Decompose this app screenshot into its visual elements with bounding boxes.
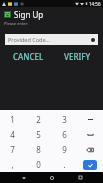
other: Backspace: [86, 146, 94, 154]
staticText: .: [63, 159, 66, 170]
button[interactable]: 5: [25, 127, 51, 142]
staticText: 5: [36, 129, 41, 140]
button[interactable]: Home: [46, 172, 57, 183]
button[interactable]: Enter: [77, 157, 103, 172]
button[interactable]: Space: [77, 127, 103, 142]
staticText: 3: [62, 114, 67, 125]
button[interactable]: 3: [51, 112, 77, 127]
button[interactable]: Recent apps: [75, 172, 86, 183]
button[interactable]: Clear text: [91, 38, 95, 42]
button[interactable]: Backspace: [77, 142, 103, 157]
button[interactable]: VERIFY: [60, 49, 95, 64]
staticText: ,: [11, 159, 14, 170]
staticText: Sign Up: [14, 9, 44, 20]
staticText: Provided Code...: [8, 36, 50, 43]
button[interactable]: 6: [51, 127, 77, 142]
button[interactable]: 8: [25, 142, 51, 157]
staticText: 6: [62, 129, 67, 140]
button[interactable]: 9: [51, 142, 77, 157]
button[interactable]: 4: [0, 127, 25, 142]
staticText: VERIFY: [64, 51, 91, 62]
staticText: 14:56: [89, 1, 101, 7]
staticText: 1: [10, 114, 15, 125]
staticText: 0: [36, 159, 41, 170]
staticText: 8: [36, 144, 41, 155]
other: Dash: [88, 117, 93, 122]
staticText: 4: [10, 129, 15, 140]
staticText: Please enter:: [4, 21, 29, 26]
staticText: 7: [10, 144, 15, 155]
button[interactable]: 2: [25, 112, 51, 127]
staticText: 9: [62, 144, 67, 155]
button[interactable]: 7: [0, 142, 25, 157]
button[interactable]: ,: [0, 157, 25, 172]
button[interactable]: .: [51, 157, 77, 172]
button[interactable]: Enter: [83, 160, 97, 170]
button[interactable]: Back: [18, 172, 29, 183]
button[interactable]: CANCEL: [9, 49, 48, 64]
staticText: 2: [36, 114, 41, 125]
button[interactable]: 0: [25, 157, 51, 172]
button[interactable]: 1: [0, 112, 25, 127]
other: Space: [87, 131, 94, 138]
button[interactable]: Dash: [77, 112, 103, 127]
staticText: CANCEL: [13, 51, 44, 62]
